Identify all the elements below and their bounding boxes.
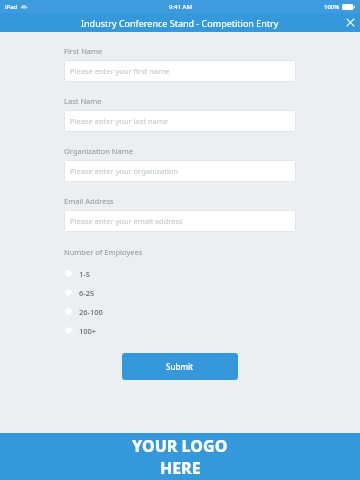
staticText: Email Address: [64, 196, 114, 206]
staticText: Please enter your organization: [70, 166, 179, 176]
staticText: Please enter your email address: [70, 216, 183, 226]
staticText: Submit: [166, 361, 194, 372]
button[interactable]: Please enter your last name: [64, 110, 296, 132]
staticText: iPad: [5, 3, 18, 11]
staticText: Please enter your first name: [70, 66, 170, 76]
staticText: 1-5: [79, 269, 90, 279]
staticText: Industry Conference Stand - Competition …: [81, 17, 279, 29]
button[interactable]: 26-100: [0, 302, 360, 321]
staticText: First Name: [64, 46, 103, 56]
button[interactable]: 100+: [0, 321, 360, 340]
staticText: YOUR LOGO: [132, 435, 228, 457]
staticText: 100+: [79, 326, 97, 336]
button[interactable]: 6-25: [0, 283, 360, 302]
button[interactable]: Submit: [122, 353, 238, 380]
button[interactable]: 1-5: [0, 264, 360, 283]
button[interactable]: Please enter your email address: [64, 210, 296, 232]
button[interactable]: Close: [341, 13, 360, 32]
staticText: Organization Name: [64, 146, 133, 156]
staticText: Number of Employees: [64, 247, 143, 257]
staticText: Please enter your last name: [70, 116, 169, 126]
staticText: HERE: [160, 457, 201, 479]
staticText: 100%: [324, 3, 340, 11]
button[interactable]: Please enter your organization: [64, 160, 296, 182]
staticText: 9:41 AM: [169, 3, 192, 11]
staticText: 26-100: [79, 307, 103, 317]
button[interactable]: Please enter your first name: [64, 60, 296, 82]
staticText: 6-25: [79, 288, 95, 298]
staticText: Last Name: [64, 96, 102, 106]
